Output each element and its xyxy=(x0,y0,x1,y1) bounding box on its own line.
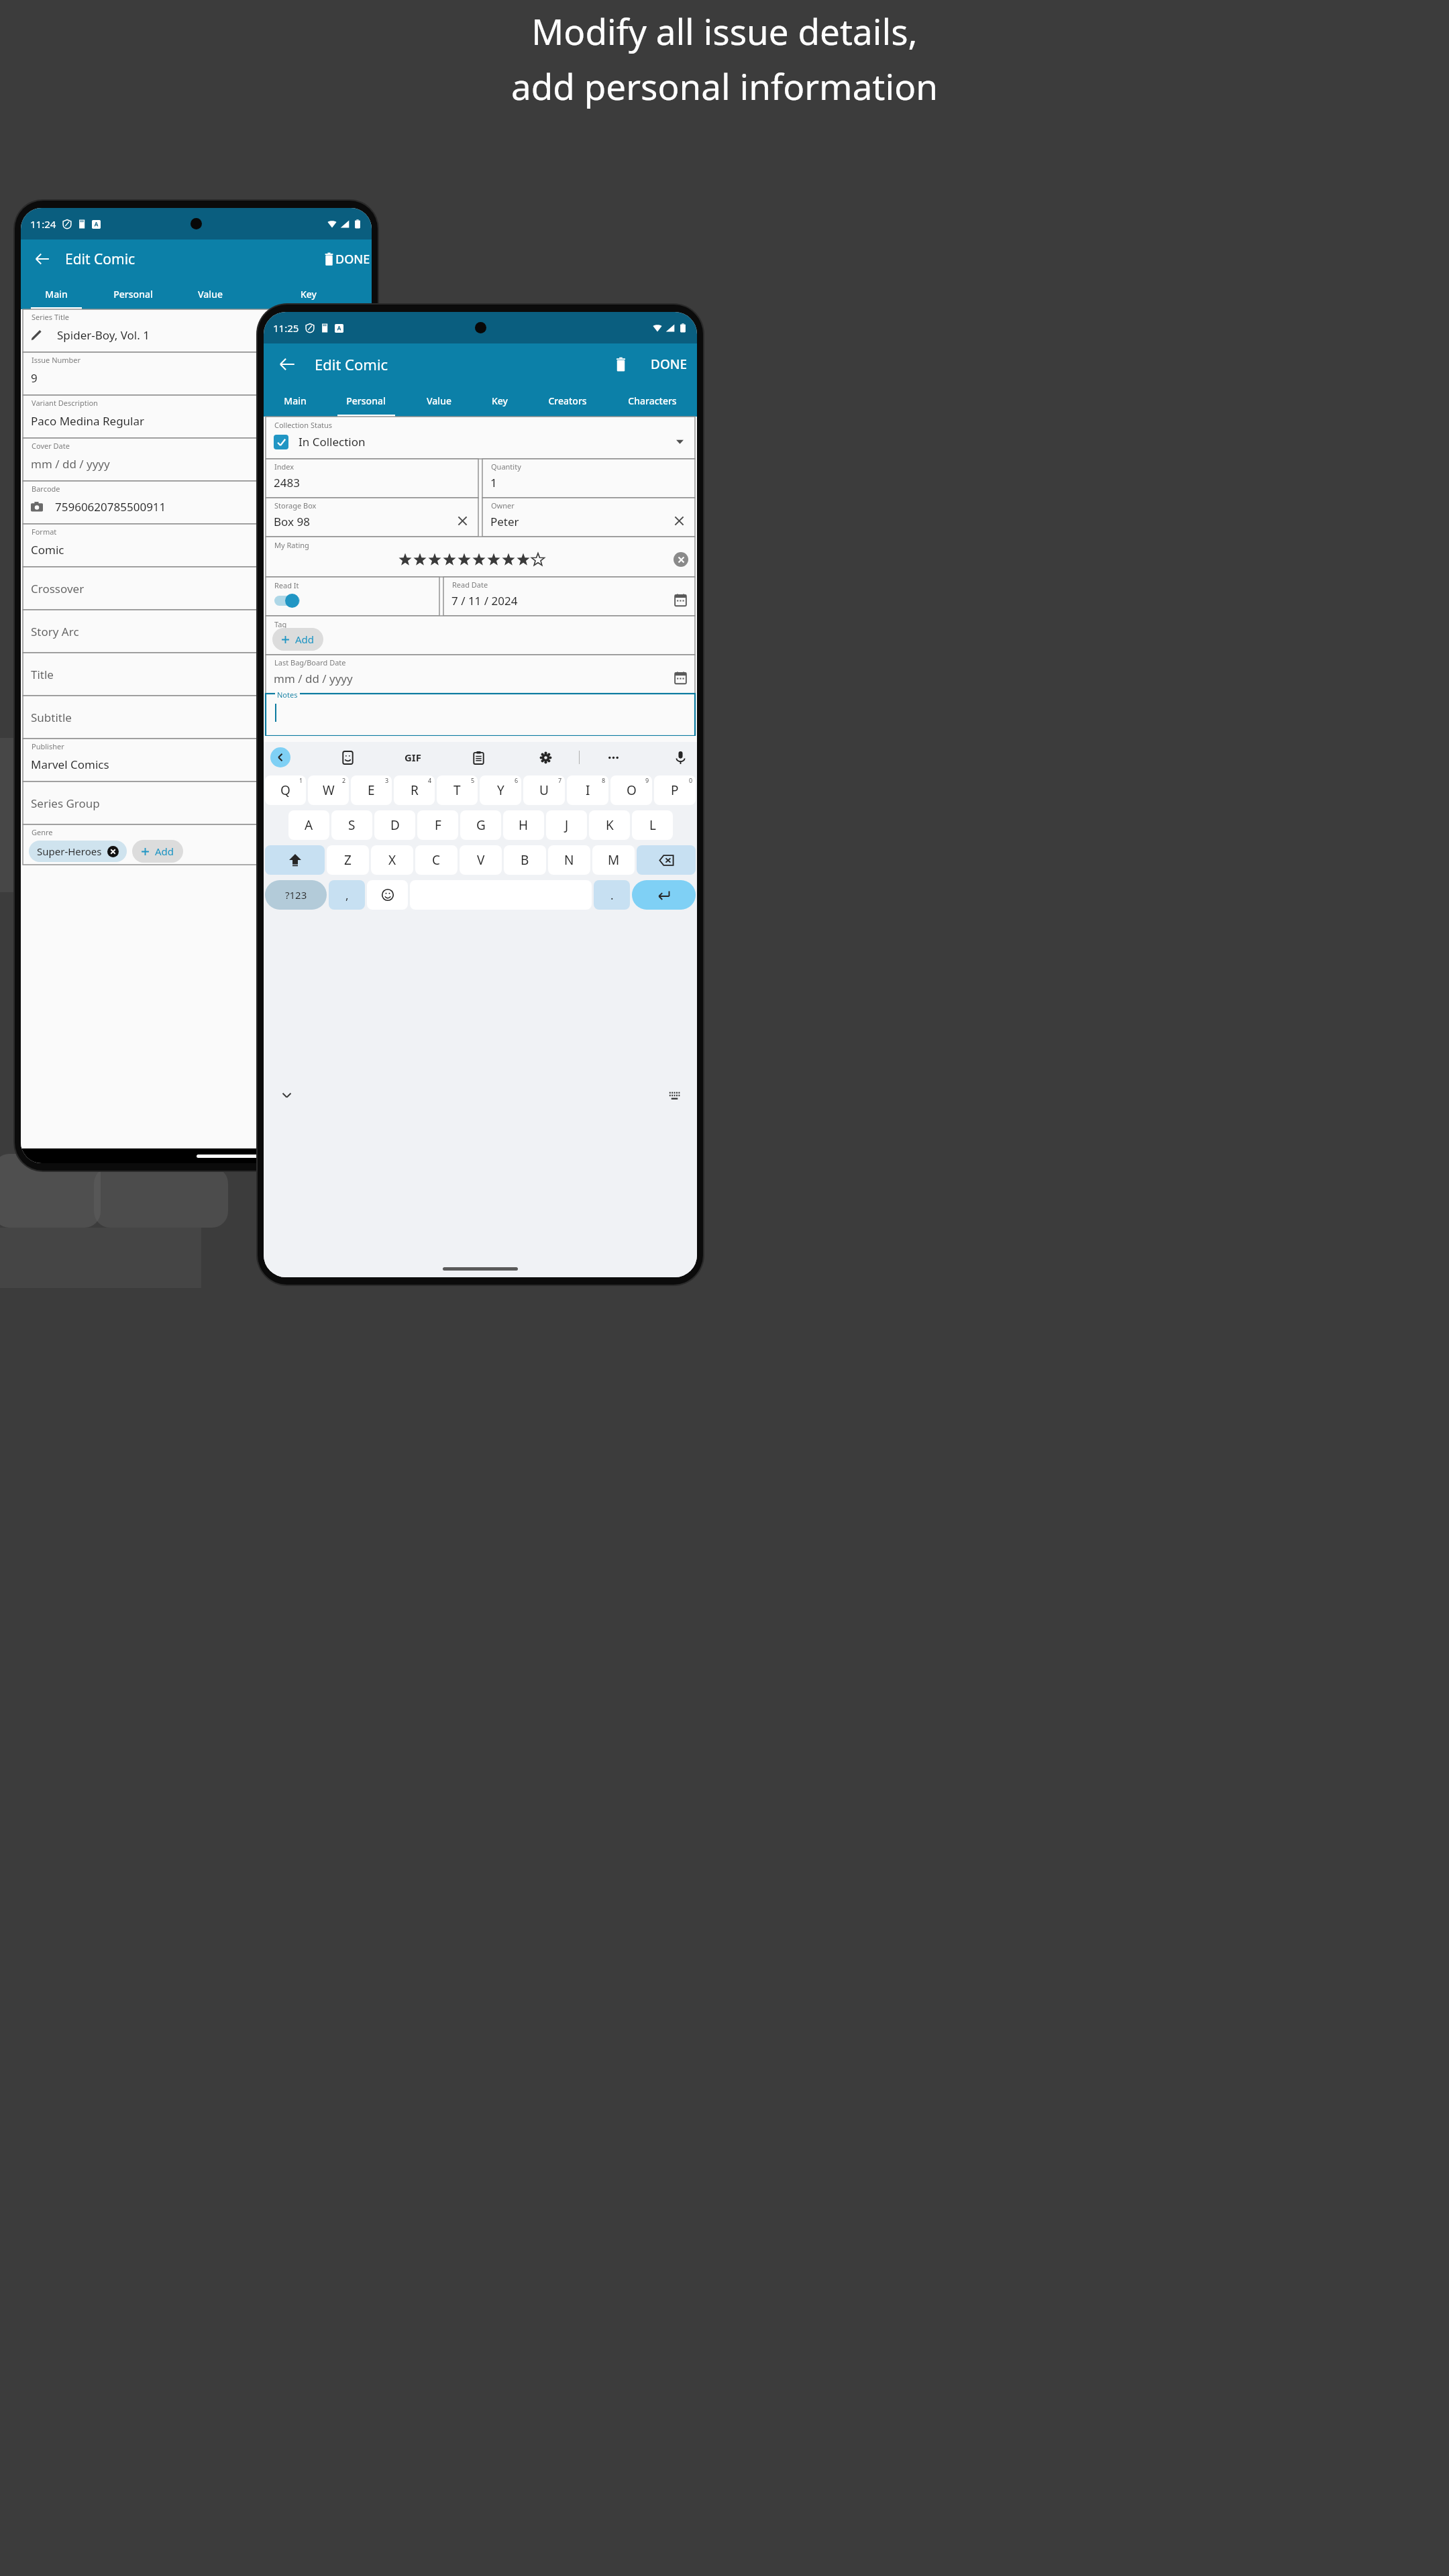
button[interactable]: R xyxy=(394,775,435,805)
button[interactable]: G xyxy=(460,810,501,840)
button[interactable]: Super-Heroes xyxy=(29,841,127,862)
button[interactable]: Z xyxy=(327,845,369,875)
staticText: Subtitle xyxy=(31,710,72,725)
button[interactable]: Cover Date xyxy=(23,438,292,481)
button[interactable]: Back xyxy=(29,246,56,272)
staticText: Personal xyxy=(346,394,386,407)
button[interactable]: Title xyxy=(23,653,370,696)
button[interactable]: Key xyxy=(246,278,372,309)
button[interactable]: Emoji xyxy=(367,880,408,910)
button[interactable]: Key xyxy=(472,385,527,417)
button[interactable]: F xyxy=(417,810,458,840)
button[interactable]: Variant Description xyxy=(23,395,370,438)
button[interactable]: Pick date xyxy=(672,592,688,608)
button[interactable]: K xyxy=(589,810,630,840)
button[interactable] xyxy=(297,352,370,395)
button[interactable]: Value xyxy=(406,385,472,417)
button[interactable]: More xyxy=(603,747,623,767)
button[interactable]: Owner xyxy=(482,498,695,537)
button[interactable]: N xyxy=(548,845,590,875)
button[interactable]: Story Arc xyxy=(23,610,370,653)
button[interactable]: Crossover xyxy=(23,567,370,610)
button[interactable]: Hide keyboard xyxy=(277,1085,296,1104)
button[interactable] xyxy=(297,782,370,824)
button[interactable]: Personal xyxy=(91,278,175,309)
button[interactable]: ?123 xyxy=(265,880,327,910)
button[interactable]: Voice input xyxy=(670,747,690,767)
button[interactable]: DONE xyxy=(651,356,688,373)
button[interactable]: Shift xyxy=(265,845,325,875)
button[interactable]: L xyxy=(632,810,673,840)
button[interactable]: Format xyxy=(23,524,370,567)
button[interactable]: Settings xyxy=(535,747,555,767)
button[interactable]: Clear rating xyxy=(674,552,688,567)
button[interactable]: D xyxy=(374,810,415,840)
button[interactable]: X xyxy=(371,845,413,875)
button[interactable]: . xyxy=(594,880,630,910)
button[interactable]: Enter xyxy=(632,880,696,910)
button[interactable]: Add xyxy=(272,628,323,651)
button[interactable] xyxy=(274,435,288,449)
button[interactable]: V xyxy=(460,845,502,875)
button[interactable]: H xyxy=(503,810,544,840)
button[interactable]: Add xyxy=(132,840,183,863)
button[interactable]: M xyxy=(592,845,635,875)
button[interactable]: Issue Number xyxy=(23,352,292,395)
button[interactable]: S xyxy=(331,810,372,840)
button[interactable]: T xyxy=(437,775,478,805)
button[interactable]: Index xyxy=(266,459,478,498)
button[interactable]: Delete xyxy=(607,351,634,378)
staticText: H xyxy=(519,816,529,834)
button[interactable]: Publisher xyxy=(23,739,292,782)
button[interactable]: Pick date xyxy=(672,669,688,686)
button[interactable]: Last Bag/Board Date xyxy=(266,655,695,694)
button[interactable]: U xyxy=(523,775,565,805)
button[interactable]: Delete xyxy=(315,246,342,272)
button[interactable]: B xyxy=(504,845,546,875)
button[interactable]: DONE xyxy=(335,251,370,268)
button[interactable] xyxy=(274,593,305,608)
button[interactable]: C xyxy=(415,845,458,875)
staticText: D xyxy=(390,816,400,834)
button[interactable]: I xyxy=(567,775,608,805)
button[interactable] xyxy=(297,739,370,782)
button[interactable]: Q xyxy=(265,775,306,805)
button[interactable]: Y xyxy=(480,775,521,805)
button[interactable]: E xyxy=(351,775,392,805)
button[interactable]: Backspace xyxy=(637,845,696,875)
button[interactable]: Clipboard xyxy=(468,747,488,767)
button[interactable]: Switch keyboard xyxy=(665,1085,684,1104)
button[interactable]: O xyxy=(610,775,652,805)
button[interactable]: Barcode xyxy=(23,481,370,524)
button[interactable]: Characters xyxy=(607,385,697,417)
button[interactable]: Expand xyxy=(268,797,284,813)
button[interactable]: Clear xyxy=(268,755,284,771)
button[interactable]: GIF xyxy=(405,751,421,764)
button[interactable]: Clear xyxy=(454,513,470,529)
button[interactable]: Subtitle xyxy=(23,696,370,739)
button[interactable]: Storage Box xyxy=(266,498,478,537)
button[interactable]: Creators xyxy=(527,385,607,417)
button[interactable]: Pick date xyxy=(270,455,286,471)
button[interactable]: P xyxy=(654,775,696,805)
button[interactable]: Main xyxy=(21,278,91,309)
button[interactable]: Quantity xyxy=(482,459,695,498)
button[interactable]: Series Title xyxy=(23,309,370,352)
button[interactable]: Collapse toolbar xyxy=(270,747,290,767)
button[interactable]: Personal xyxy=(326,385,406,417)
staticText: Add xyxy=(295,633,315,646)
button[interactable]: Stickers xyxy=(337,747,358,767)
button[interactable]: , xyxy=(329,880,365,910)
button[interactable]: Clear xyxy=(671,513,687,529)
button[interactable]: Series Group xyxy=(23,782,292,824)
button[interactable]: Read Date xyxy=(443,577,695,616)
button[interactable]: W xyxy=(308,775,349,805)
button[interactable]: A xyxy=(288,810,329,840)
button[interactable]: Value xyxy=(175,278,246,309)
button[interactable] xyxy=(297,438,370,481)
button[interactable]: Main xyxy=(264,385,326,417)
button[interactable]: J xyxy=(546,810,587,840)
button[interactable]: Back xyxy=(273,350,301,378)
button[interactable]: Expand xyxy=(672,434,687,449)
